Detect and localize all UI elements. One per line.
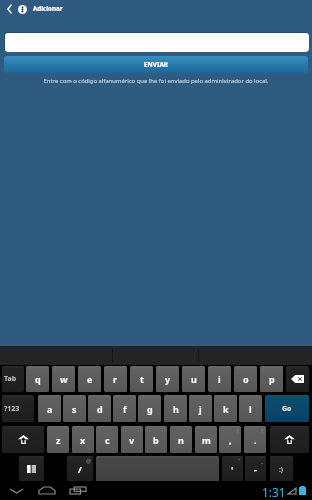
button[interactable]: u [182, 366, 205, 392]
button[interactable]: ?123 [2, 395, 34, 422]
staticText: u [191, 373, 197, 385]
button[interactable]: Slash [67, 456, 93, 482]
button[interactable]: Shift [2, 426, 44, 453]
staticText: a [47, 403, 53, 415]
staticText: ?123 [4, 404, 20, 414]
staticText: , [229, 434, 232, 446]
staticText: m [202, 434, 211, 446]
staticText: ' [231, 463, 234, 475]
staticText: g [147, 403, 153, 415]
button[interactable] [4, 32, 309, 52]
button[interactable]: z [47, 426, 69, 453]
button[interactable]: y [156, 366, 179, 392]
staticText: Go [282, 404, 292, 414]
button[interactable]: m [195, 426, 217, 453]
staticText: _ [261, 457, 264, 464]
button[interactable]: Shift [270, 426, 309, 453]
button[interactable]: e [78, 366, 101, 392]
button[interactable]: k [214, 395, 237, 422]
staticText: w [60, 373, 68, 385]
button[interactable]: r [104, 366, 127, 392]
staticText: ? [261, 427, 264, 434]
button[interactable]: Space [96, 456, 219, 482]
staticText: y [165, 373, 171, 385]
button[interactable]: j [189, 395, 212, 422]
button[interactable]: l [239, 395, 262, 422]
button[interactable]: d [88, 395, 111, 422]
staticText: Adicionar [33, 4, 63, 12]
button[interactable]: Tab [2, 366, 24, 392]
button[interactable]: w [52, 366, 75, 392]
button[interactable]: q [26, 366, 49, 392]
button[interactable]: Go [265, 395, 309, 422]
staticText: i [218, 373, 221, 385]
button[interactable]: t [130, 366, 153, 392]
button[interactable]: p [260, 366, 283, 392]
staticText: q [35, 373, 41, 385]
button[interactable]: g [138, 395, 161, 422]
staticText: h [173, 403, 179, 415]
staticText: k [223, 403, 229, 415]
staticText: d [97, 403, 103, 415]
staticText: 1:31 [262, 484, 286, 500]
button[interactable]: :) [270, 456, 293, 482]
button[interactable]: f [113, 395, 136, 422]
staticText: ENVIAR [144, 60, 169, 69]
staticText: :) [279, 465, 284, 474]
button[interactable]: o [234, 366, 257, 392]
staticText: Entre com o código alfanumérico que lhe … [12, 77, 300, 85]
staticText: / [78, 463, 82, 475]
staticText: b [153, 434, 159, 446]
staticText: @ [86, 457, 91, 464]
button[interactable]: Switch keyboard [19, 456, 44, 482]
button[interactable]: s [63, 395, 86, 422]
staticText: j [199, 403, 202, 415]
button[interactable]: Home [34, 481, 60, 500]
staticText: p [269, 373, 275, 385]
staticText: v [129, 434, 135, 446]
staticText: l [249, 403, 252, 415]
staticText: z [56, 434, 61, 446]
staticText: o [243, 373, 249, 385]
staticText: c [105, 434, 110, 446]
staticText: x [80, 434, 86, 446]
button[interactable]: Apostrophe [222, 456, 243, 482]
button[interactable]: i [208, 366, 231, 392]
button[interactable]: , [219, 426, 241, 453]
staticText: t [140, 373, 144, 385]
button[interactable]: . [244, 426, 266, 453]
button[interactable]: Back [0, 0, 18, 18]
staticText: Tab [4, 374, 17, 384]
button[interactable]: x [72, 426, 94, 453]
button[interactable]: a [38, 395, 61, 422]
button[interactable]: Recent apps [65, 481, 91, 500]
button[interactable]: Backspace [286, 366, 309, 392]
button[interactable]: h [164, 395, 187, 422]
button[interactable]: Back [3, 481, 29, 500]
staticText: " [238, 457, 241, 464]
staticText: r [113, 373, 118, 385]
button[interactable]: v [121, 426, 143, 453]
button[interactable]: ENVIAR [4, 56, 308, 73]
staticText: - [254, 463, 257, 475]
staticText: n [178, 434, 184, 446]
staticText: f [123, 403, 127, 415]
staticText: s [72, 403, 77, 415]
button[interactable]: b [145, 426, 167, 453]
staticText: e [87, 373, 93, 385]
staticText: ! [237, 427, 239, 434]
button[interactable]: App icon [18, 5, 27, 14]
button[interactable]: Dash [245, 456, 266, 482]
staticText: . [254, 434, 257, 446]
button[interactable]: c [96, 426, 118, 453]
button[interactable]: n [170, 426, 192, 453]
